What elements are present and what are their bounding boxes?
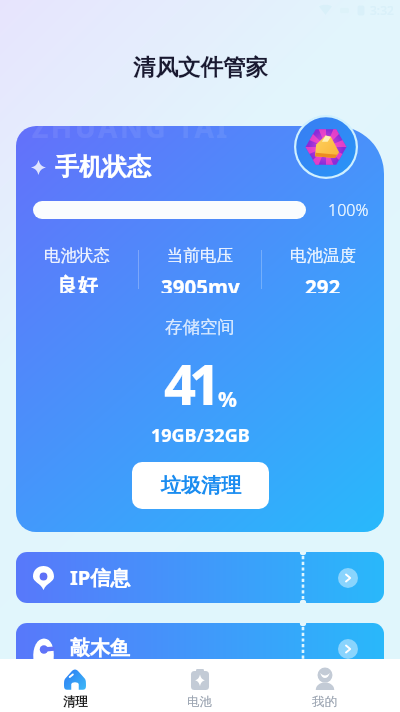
staticText: 电池状态 [44,245,110,266]
staticText: 3905mv [161,273,240,293]
staticText: 电池 [187,694,212,710]
staticText: IP信息 [70,564,131,591]
staticText: % [218,385,237,414]
staticText: 我的 [312,694,337,710]
staticText: 敲木鱼 [70,636,130,661]
staticText: 100% [328,199,369,221]
staticText: 19GB/32GB [151,423,250,448]
staticText: 存储空间 [165,316,235,338]
button[interactable]: IP信息 [16,552,384,603]
button[interactable]: 电池 [137,659,262,712]
button[interactable]: Open [338,639,358,659]
staticText: ZHUANG TAI [32,126,230,146]
staticText: 良好 [57,273,98,293]
staticText: 41 [164,345,215,421]
staticText: 292 [305,273,341,293]
button[interactable]: 垃圾清理 [132,462,269,509]
staticText: 清风文件管家 [133,53,268,81]
button[interactable]: 我的 [262,659,387,712]
button[interactable]: 清理 [13,659,137,712]
staticText: 电池温度 [290,245,356,266]
staticText: 垃圾清理 [161,473,241,498]
staticText: 当前电压 [167,245,233,266]
button[interactable]: 敲木鱼 [16,623,384,674]
button[interactable]: Open [338,568,358,588]
staticText: 3:32 [370,2,394,18]
staticText: 清理 [63,694,88,710]
button[interactable]: Level badge [294,115,358,179]
staticText: 手机状态 [55,152,151,182]
